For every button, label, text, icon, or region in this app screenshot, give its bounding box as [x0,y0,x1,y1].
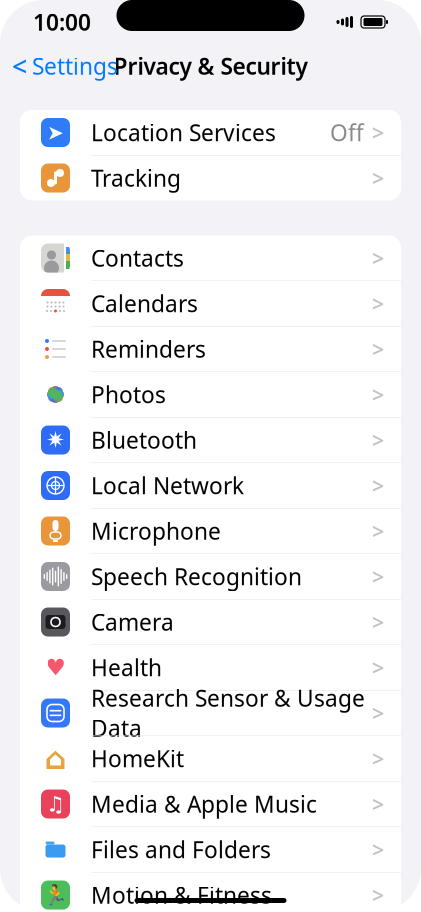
button[interactable]: Tracking [20,155,401,200]
staticText: > [372,118,384,147]
staticText: Privacy & Security [113,51,307,81]
staticText: Bluetooth [91,425,197,455]
staticText: HomeKit [91,743,184,773]
staticText: ✷ [46,427,65,453]
button[interactable]: Calendars [20,281,401,326]
staticText: Contacts [91,243,184,273]
staticText: > [372,835,384,864]
staticText: Reminders [91,334,206,364]
staticText: > [372,608,384,636]
staticText: > [372,744,384,773]
staticText: Local Network [91,470,244,500]
staticText: > [372,426,384,454]
staticText: > [372,881,384,909]
staticText: Health [91,652,162,682]
staticText: Media & Apple Music [91,789,317,819]
staticText: Motion & Fitness [91,880,272,910]
staticText: Location Services [91,117,276,147]
staticText: > [372,471,384,500]
button[interactable]: ✷ [20,417,401,463]
staticText: Research Sensor & Usage Data [91,683,365,743]
button[interactable]: < [0,42,118,90]
staticText: Microphone [91,516,221,546]
button[interactable]: ⌂ [20,736,401,781]
staticText: > [372,335,384,363]
button[interactable]: ♫ [20,781,401,827]
staticText: Tracking [91,163,181,193]
staticText: > [372,562,384,591]
staticText: Speech Recognition [91,561,302,591]
button[interactable]: Local Network [20,463,401,508]
staticText: > [372,699,384,727]
staticText: Photos [91,379,166,409]
staticText: ♫ [46,792,65,816]
button[interactable]: Files and Folders [20,827,401,872]
staticText: ♥ [45,655,65,680]
staticText: > [372,790,384,818]
staticText: Files and Folders [91,834,271,864]
staticText: > [372,380,384,409]
button[interactable]: Speech Recognition [20,554,401,599]
button[interactable]: Camera [20,599,401,645]
button[interactable]: Reminders [20,326,401,372]
staticText: ⌂ [44,741,66,776]
button[interactable]: Contacts [20,235,401,281]
button[interactable]: Research Sensor & Usage Data [20,690,401,736]
staticText: Settings [32,51,118,81]
button[interactable]: ➤ [20,110,401,155]
staticText: < [12,48,27,84]
button[interactable]: 🏃 [20,872,401,912]
staticText: > [372,244,384,272]
staticText: > [372,517,384,545]
button[interactable]: ♥ [20,645,401,690]
staticText: > [372,164,384,192]
button[interactable]: Microphone [20,508,401,554]
staticText: Calendars [91,288,198,318]
staticText: Camera [91,607,174,637]
staticText: ➤ [47,121,64,144]
staticText: > [372,289,384,318]
staticText: 🏃 [43,884,68,906]
staticText: Off [330,117,364,147]
staticText: 10:00 [33,7,91,37]
staticText: > [372,653,384,682]
button[interactable]: Photos [20,372,401,417]
